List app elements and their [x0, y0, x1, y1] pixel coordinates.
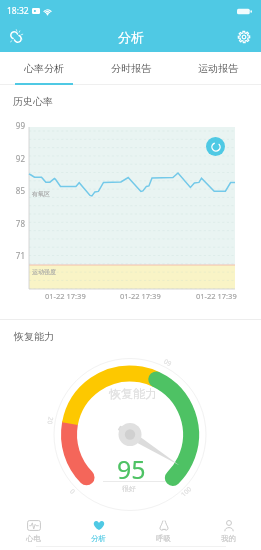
button[interactable]: 心率分析 [0, 52, 87, 85]
button[interactable]: 运动报告 [174, 52, 261, 85]
staticText: 01-22 17:39 [196, 291, 243, 301]
staticText: 恢复能力 [14, 330, 54, 343]
staticText: 60 [162, 357, 173, 368]
staticText: 很好 [122, 484, 136, 493]
staticText: 分时报告 [111, 62, 151, 75]
button[interactable]: 分时报告 [87, 52, 174, 85]
staticText: 100 [179, 484, 194, 499]
staticText: 有氧区 [32, 190, 50, 198]
button[interactable]: Device disconnected [3, 24, 29, 50]
button[interactable]: Refresh [206, 137, 225, 156]
staticText: 01-22 17:39 [120, 291, 167, 301]
staticText: 历史心率 [13, 95, 53, 108]
button[interactable]: 呼吸 [131, 516, 196, 544]
staticText: 呼吸 [156, 534, 171, 543]
staticText: 分析 [91, 534, 106, 543]
staticText: 我的 [221, 534, 236, 543]
button[interactable]: 心电 [0, 516, 66, 544]
staticText: 0 [68, 487, 77, 496]
staticText: 85 [15, 185, 25, 196]
staticText: 运动强度 [32, 268, 56, 276]
staticText: 95 [117, 452, 146, 486]
button[interactable]: 我的 [196, 516, 261, 544]
staticText: 99 [15, 120, 25, 131]
staticText: 71 [15, 250, 25, 261]
staticText: 心电 [26, 534, 41, 543]
staticText: 运动报告 [198, 62, 238, 75]
button[interactable]: Settings [231, 24, 257, 50]
staticText: 20 [45, 416, 56, 426]
staticText: 01-22 17:39 [45, 291, 92, 301]
staticText: 恢复能力 [109, 386, 157, 401]
staticText: 分析 [118, 29, 144, 45]
staticText: 心率分析 [24, 62, 64, 75]
staticText: 78 [15, 218, 25, 229]
staticText: 92 [15, 153, 25, 164]
staticText: 18:32 [7, 5, 29, 17]
button[interactable]: 分析 [66, 516, 131, 544]
